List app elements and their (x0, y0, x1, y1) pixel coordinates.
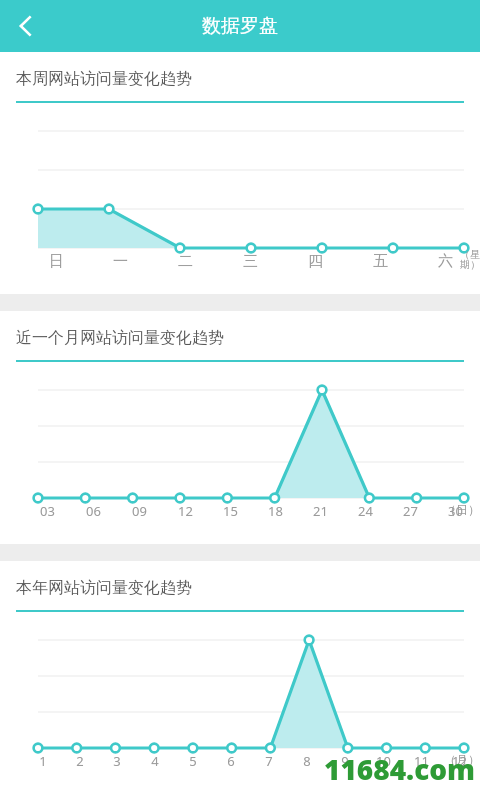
staticText: 10 (376, 752, 391, 770)
staticText: 五 (373, 252, 388, 271)
staticText: 21 (313, 502, 328, 520)
staticText: 近一个月网站访问量变化趋势 (16, 328, 224, 348)
staticText: 3 (113, 752, 121, 770)
staticText: 12 (178, 502, 193, 520)
staticText: 2 (76, 752, 84, 770)
staticText: （月） (444, 752, 480, 767)
staticText: （星 期） (460, 248, 480, 271)
staticText: 一 (113, 252, 128, 271)
staticText: 11 (414, 752, 429, 770)
button[interactable]: 返回 (0, 0, 52, 52)
staticText: 8 (303, 752, 311, 770)
staticText: 6 (227, 752, 235, 770)
staticText: 09 (132, 502, 147, 520)
staticText: 四 (308, 252, 323, 271)
staticText: 03 (40, 502, 55, 520)
staticText: 六 (438, 252, 453, 271)
staticText: 06 (86, 502, 101, 520)
staticText: 1 (39, 752, 47, 770)
staticText: 数据罗盘 (202, 14, 278, 38)
staticText: （日） (444, 502, 480, 517)
staticText: 12 (452, 752, 467, 770)
staticText: 18 (268, 502, 283, 520)
staticText: 本周网站访问量变化趋势 (16, 69, 192, 89)
staticText: 11684.com (324, 750, 476, 788)
staticText: 5 (189, 752, 197, 770)
staticText: 4 (151, 752, 159, 770)
staticText: 7 (265, 752, 273, 770)
staticText: 三 (243, 252, 258, 271)
staticText: 二 (178, 252, 193, 271)
staticText: 24 (358, 502, 373, 520)
staticText: 日 (49, 252, 64, 271)
staticText: 9 (341, 752, 349, 770)
staticText: 30 (448, 502, 463, 520)
staticText: 15 (223, 502, 238, 520)
staticText: 27 (403, 502, 418, 520)
staticText: 本年网站访问量变化趋势 (16, 578, 192, 598)
